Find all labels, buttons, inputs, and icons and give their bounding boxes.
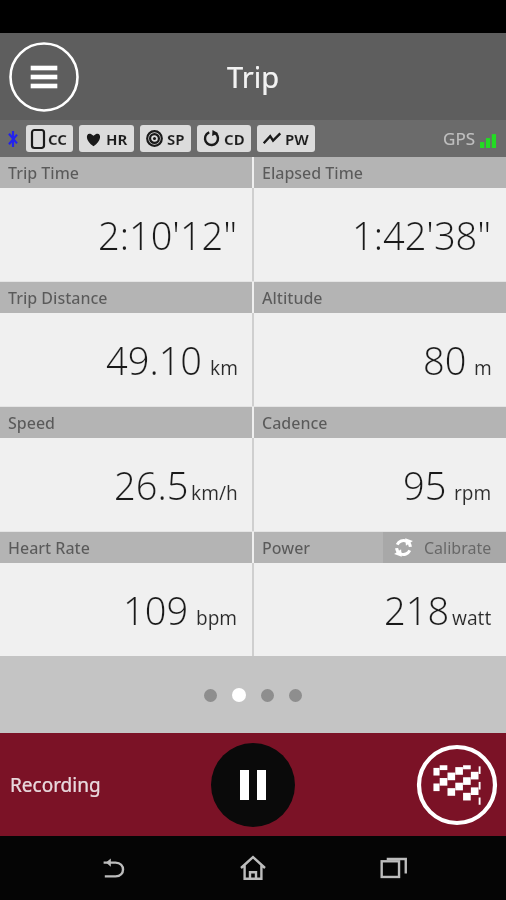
staticText: PW [285, 129, 309, 149]
staticText: km/h [191, 480, 238, 506]
staticText: 80 [423, 334, 467, 386]
staticText: CC [48, 129, 67, 149]
button[interactable]: SP [140, 125, 191, 152]
staticText: km [210, 355, 238, 381]
staticText: 109 [123, 584, 189, 636]
staticText: 95 [403, 459, 447, 511]
staticText: SP [167, 129, 185, 149]
staticText: Elapsed Time [262, 162, 363, 184]
button[interactable]: Page 1 [204, 689, 217, 702]
staticText: Trip [227, 57, 279, 96]
staticText: 2:10'12" [98, 209, 238, 261]
staticText: Trip Time [8, 162, 80, 184]
button[interactable]: 2:10'12" [0, 188, 252, 281]
button[interactable]: 95 [254, 438, 506, 531]
button[interactable]: PW [257, 125, 315, 152]
button[interactable]: 1:42'38" [254, 188, 506, 281]
button[interactable]: Open navigation menu [8, 41, 80, 113]
button[interactable]: Back [83, 839, 141, 897]
button[interactable]: Calibrate [383, 532, 506, 563]
staticText: Speed [8, 412, 56, 434]
staticText: Cadence [262, 412, 328, 434]
staticText: Recording [10, 772, 101, 798]
button[interactable]: 109 [0, 563, 252, 656]
button[interactable]: Page 3 [261, 689, 274, 702]
button[interactable]: Finish ride [416, 744, 498, 826]
button[interactable]: HR [79, 125, 134, 152]
button[interactable]: Recent apps [365, 839, 423, 897]
staticText: HR [106, 129, 128, 149]
staticText: Heart Rate [8, 537, 90, 559]
staticText: rpm [454, 480, 492, 506]
button[interactable]: Home [224, 839, 282, 897]
button[interactable]: 80 [254, 313, 506, 406]
button[interactable]: 49.10 [0, 313, 252, 406]
staticText: watt [452, 605, 492, 631]
button[interactable]: Page 4 [289, 689, 302, 702]
staticText: Power [262, 537, 311, 559]
staticText: 218 [384, 584, 450, 636]
staticText: bpm [196, 605, 238, 631]
staticText: CD [224, 129, 245, 149]
button[interactable]: 26.5 [0, 438, 252, 531]
staticText: Trip Distance [8, 287, 108, 309]
staticText: 26.5 [114, 459, 189, 511]
button[interactable]: Page 2 [232, 688, 246, 702]
button[interactable]: 218 [254, 563, 506, 656]
button[interactable]: CD [197, 125, 251, 152]
staticText: Calibrate [424, 537, 492, 559]
staticText: m [474, 355, 492, 381]
staticText: Altitude [262, 287, 323, 309]
button[interactable]: Pause recording [211, 743, 295, 827]
staticText: GPS [443, 127, 475, 150]
button[interactable]: CC [26, 125, 73, 152]
staticText: 49.10 [106, 334, 203, 386]
staticText: 1:42'38" [352, 209, 492, 261]
